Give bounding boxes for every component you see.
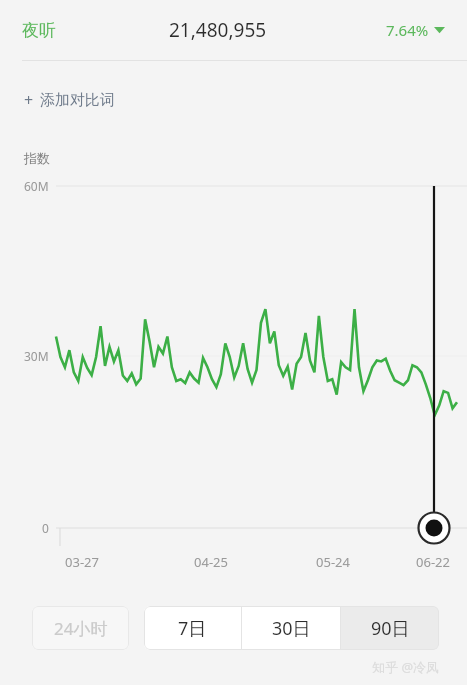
staticText: 24小时 [54, 617, 108, 640]
staticText: + [24, 89, 34, 111]
staticText: 05-24 [311, 553, 355, 571]
staticText: 夜听 [22, 20, 56, 41]
staticText: 21,480,955 [169, 17, 267, 43]
button[interactable]: 7日 [144, 606, 241, 650]
staticText: 7日 [178, 616, 207, 641]
staticText: 0 [42, 520, 49, 536]
staticText: 30M [24, 348, 49, 364]
staticText: 04-25 [189, 553, 233, 571]
button[interactable]: + [20, 85, 119, 115]
button[interactable]: 24小时 [32, 606, 129, 650]
staticText: 7.64% [386, 20, 429, 40]
staticText: 03-27 [60, 553, 104, 571]
staticText: 60M [24, 178, 49, 194]
staticText: 知乎 @冷凤 [372, 658, 440, 676]
staticText: 指数 [24, 150, 50, 166]
staticText: 90日 [371, 616, 410, 641]
staticText: 添加对比词 [40, 91, 115, 110]
staticText: 30日 [272, 616, 311, 641]
button[interactable]: 90日 [341, 606, 439, 650]
staticText: 06-22 [411, 553, 455, 571]
button[interactable]: 30日 [242, 606, 340, 650]
